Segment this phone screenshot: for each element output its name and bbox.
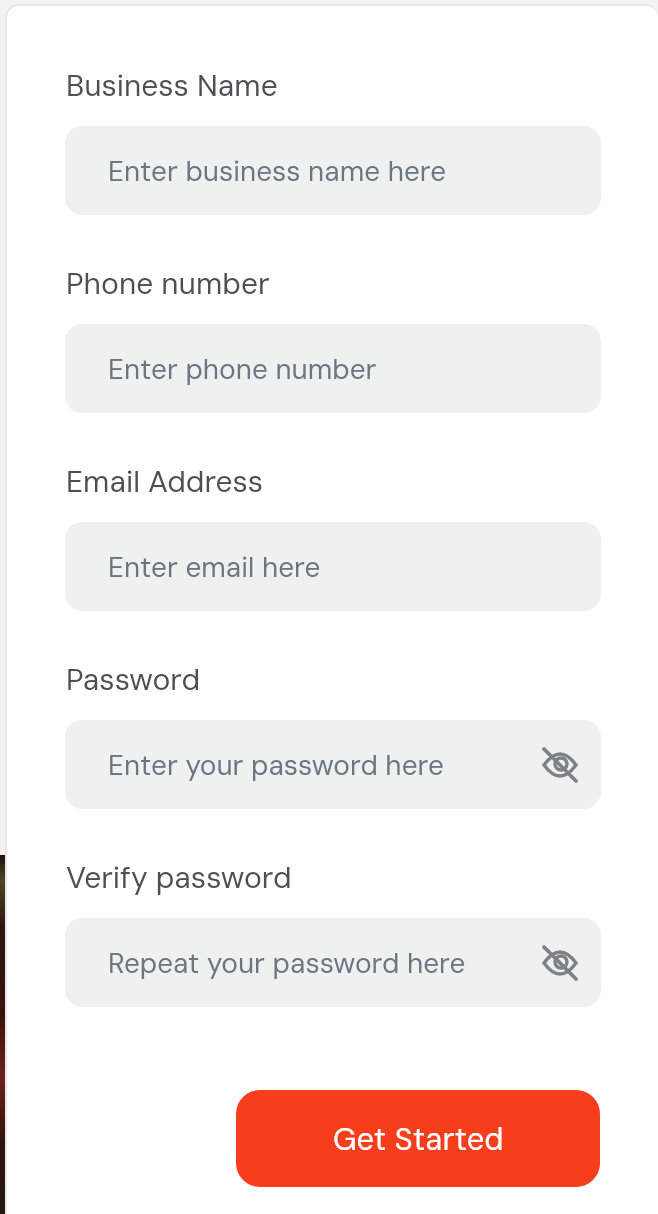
staticText: Enter phone number <box>108 351 377 387</box>
staticText: Repeat your password here <box>108 945 466 981</box>
button[interactable]: Get Started <box>236 1090 600 1187</box>
button[interactable]: Enter business name here <box>65 126 601 215</box>
staticText: Enter email here <box>108 549 321 585</box>
staticText: Enter business name here <box>108 153 447 189</box>
button[interactable]: Enter phone number <box>65 324 601 413</box>
staticText: Enter your password here <box>108 747 444 783</box>
staticText: Business Name <box>66 66 278 105</box>
staticText: Password <box>66 660 201 699</box>
button[interactable]: Repeat your password here <box>65 918 601 1007</box>
staticText: Get Started <box>333 1119 504 1159</box>
button[interactable]: Enter email here <box>65 522 601 611</box>
staticText: Email Address <box>66 462 264 501</box>
staticText: Verify password <box>66 858 292 897</box>
button[interactable]: Enter your password here <box>65 720 601 809</box>
staticText: Phone number <box>66 264 270 303</box>
